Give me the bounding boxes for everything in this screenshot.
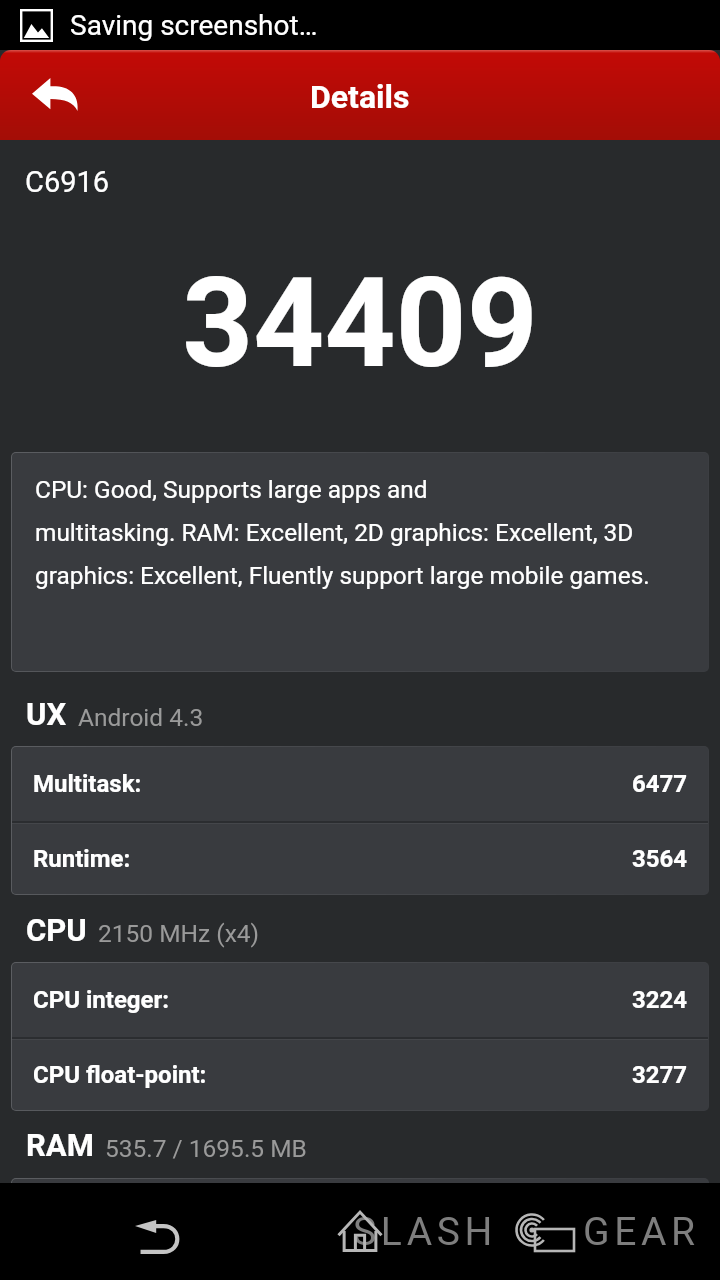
staticText: 535.7 / 1695.5 MB [105,1134,307,1163]
button[interactable]: CPU float-point: [12,1040,708,1110]
staticText: CPU: Good, Supports large apps and multi… [35,475,650,590]
staticText: Details [310,78,410,116]
staticText: RAM [26,1127,94,1163]
staticText: 6477 [632,770,688,798]
staticText: C6916 [25,165,110,199]
staticText: Multitask: [33,770,142,798]
staticText: GEAR [583,1209,700,1255]
button[interactable]: Back [0,50,110,140]
button[interactable]: Back [123,1209,193,1265]
staticText: 34409 [0,251,720,396]
staticText: UX [26,696,67,732]
staticText: Android 4.3 [78,703,204,732]
staticText: Runtime: [33,845,131,873]
button[interactable]: CPU integer: [12,963,708,1037]
staticText: CPU [26,912,87,948]
staticText: SLASH [353,1209,497,1255]
button[interactable]: Runtime: [12,824,708,894]
staticText: 3224 [632,986,688,1014]
button[interactable]: Multitask: [12,747,708,821]
staticText: 2150 MHz (x4) [98,919,260,948]
staticText: 3277 [632,1061,688,1089]
staticText: CPU integer: [33,986,170,1014]
staticText: Saving screenshot… [70,9,318,42]
staticText: 3564 [632,845,688,873]
staticText: CPU float-point: [33,1061,207,1089]
